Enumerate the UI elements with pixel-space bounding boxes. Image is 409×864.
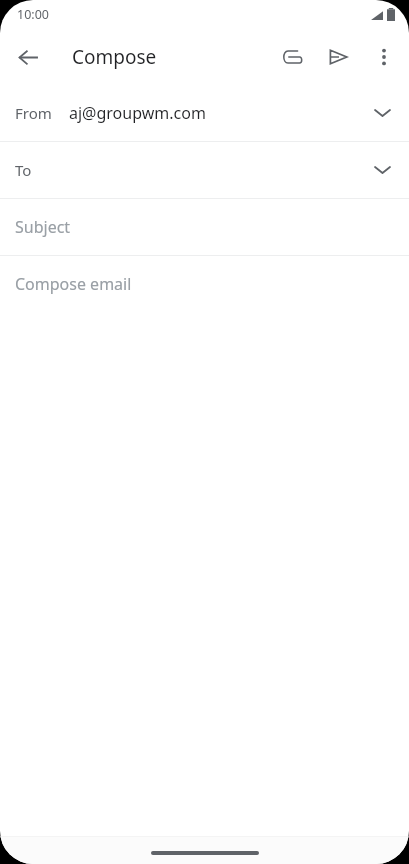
- staticText: Compose email: [15, 273, 132, 295]
- button[interactable]: Compose email: [0, 256, 409, 312]
- staticText: Compose: [72, 44, 157, 70]
- button[interactable]: Subject: [0, 199, 409, 255]
- button[interactable]: Expand: [365, 153, 399, 187]
- button[interactable]: Back: [6, 35, 50, 79]
- staticText: aj@groupwm.com: [69, 102, 206, 124]
- button[interactable]: From: [0, 85, 409, 141]
- button[interactable]: More options: [361, 34, 407, 80]
- button[interactable]: Expand: [365, 96, 399, 130]
- button[interactable]: Attach file: [269, 34, 315, 80]
- button[interactable]: Send: [315, 34, 361, 80]
- staticText: 10:00: [17, 6, 49, 23]
- staticText: Subject: [15, 216, 71, 238]
- button[interactable]: To: [0, 142, 409, 198]
- staticText: From: [15, 103, 52, 123]
- staticText: To: [15, 160, 32, 180]
